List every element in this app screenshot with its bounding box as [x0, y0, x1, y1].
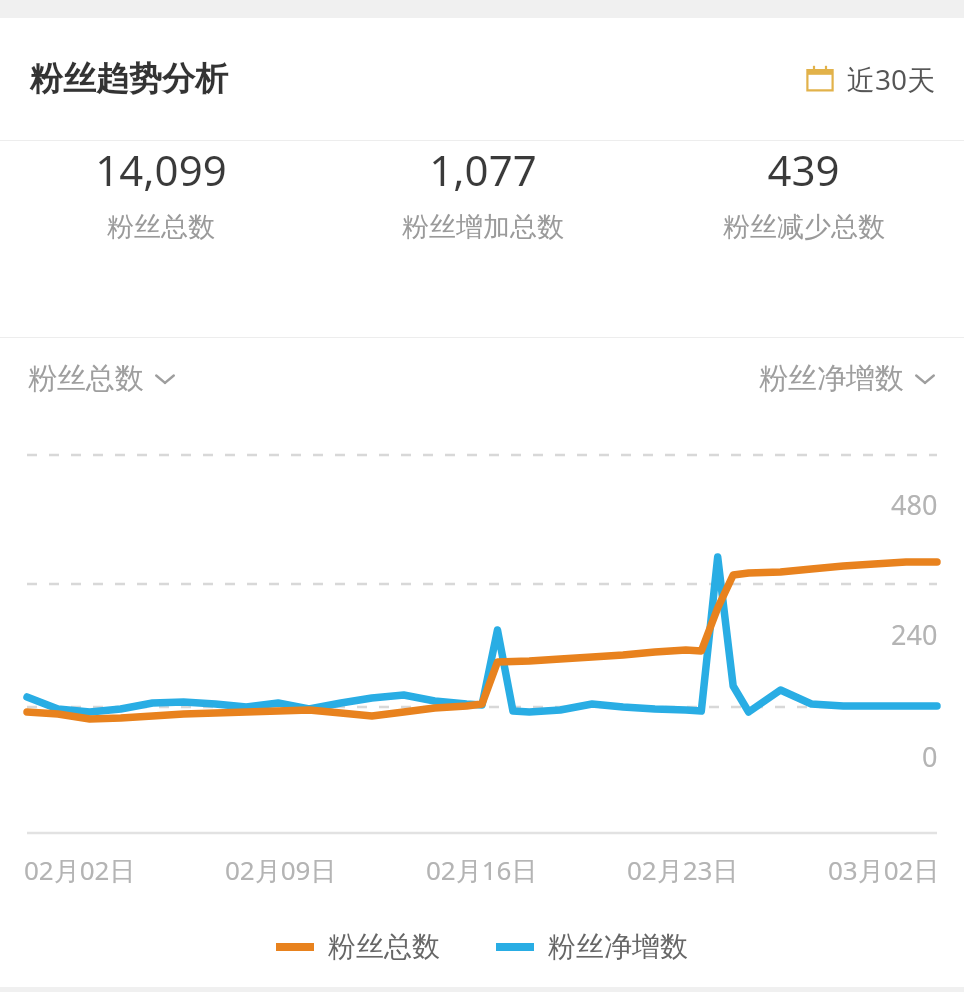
- staticText: 14,099: [95, 141, 227, 198]
- staticText: 粉丝净增数: [548, 929, 688, 964]
- button[interactable]: 439: [643, 141, 964, 244]
- button[interactable]: 粉丝净增数: [759, 360, 936, 397]
- staticText: 粉丝减少总数: [723, 210, 885, 244]
- staticText: 0: [922, 738, 938, 775]
- button[interactable]: 1,077: [322, 141, 643, 244]
- staticText: 02月09日: [225, 852, 337, 888]
- other: Expand: [154, 372, 176, 386]
- staticText: 粉丝趋势分析: [30, 58, 228, 100]
- staticText: 粉丝增加总数: [402, 210, 564, 244]
- other: Expand: [914, 372, 936, 386]
- button[interactable]: 近30天: [805, 60, 936, 98]
- staticText: 02月23日: [627, 852, 739, 888]
- button[interactable]: 粉丝总数: [28, 360, 176, 397]
- staticText: 粉丝总数: [28, 360, 144, 397]
- button[interactable]: 粉丝净增数: [496, 929, 688, 964]
- staticText: 02月16日: [426, 852, 538, 888]
- staticText: 02月02日: [24, 852, 136, 888]
- button[interactable]: 14,099: [0, 141, 322, 244]
- staticText: 1,077: [429, 141, 537, 198]
- staticText: 480: [891, 486, 938, 523]
- staticText: 03月02日: [828, 852, 940, 888]
- staticText: 240: [891, 616, 938, 653]
- staticText: 粉丝净增数: [759, 360, 904, 397]
- staticText: 近30天: [847, 60, 936, 98]
- staticText: 439: [767, 141, 840, 198]
- staticText: 粉丝总数: [107, 210, 215, 244]
- staticText: 粉丝总数: [328, 929, 440, 964]
- button[interactable]: 粉丝总数: [276, 929, 440, 964]
